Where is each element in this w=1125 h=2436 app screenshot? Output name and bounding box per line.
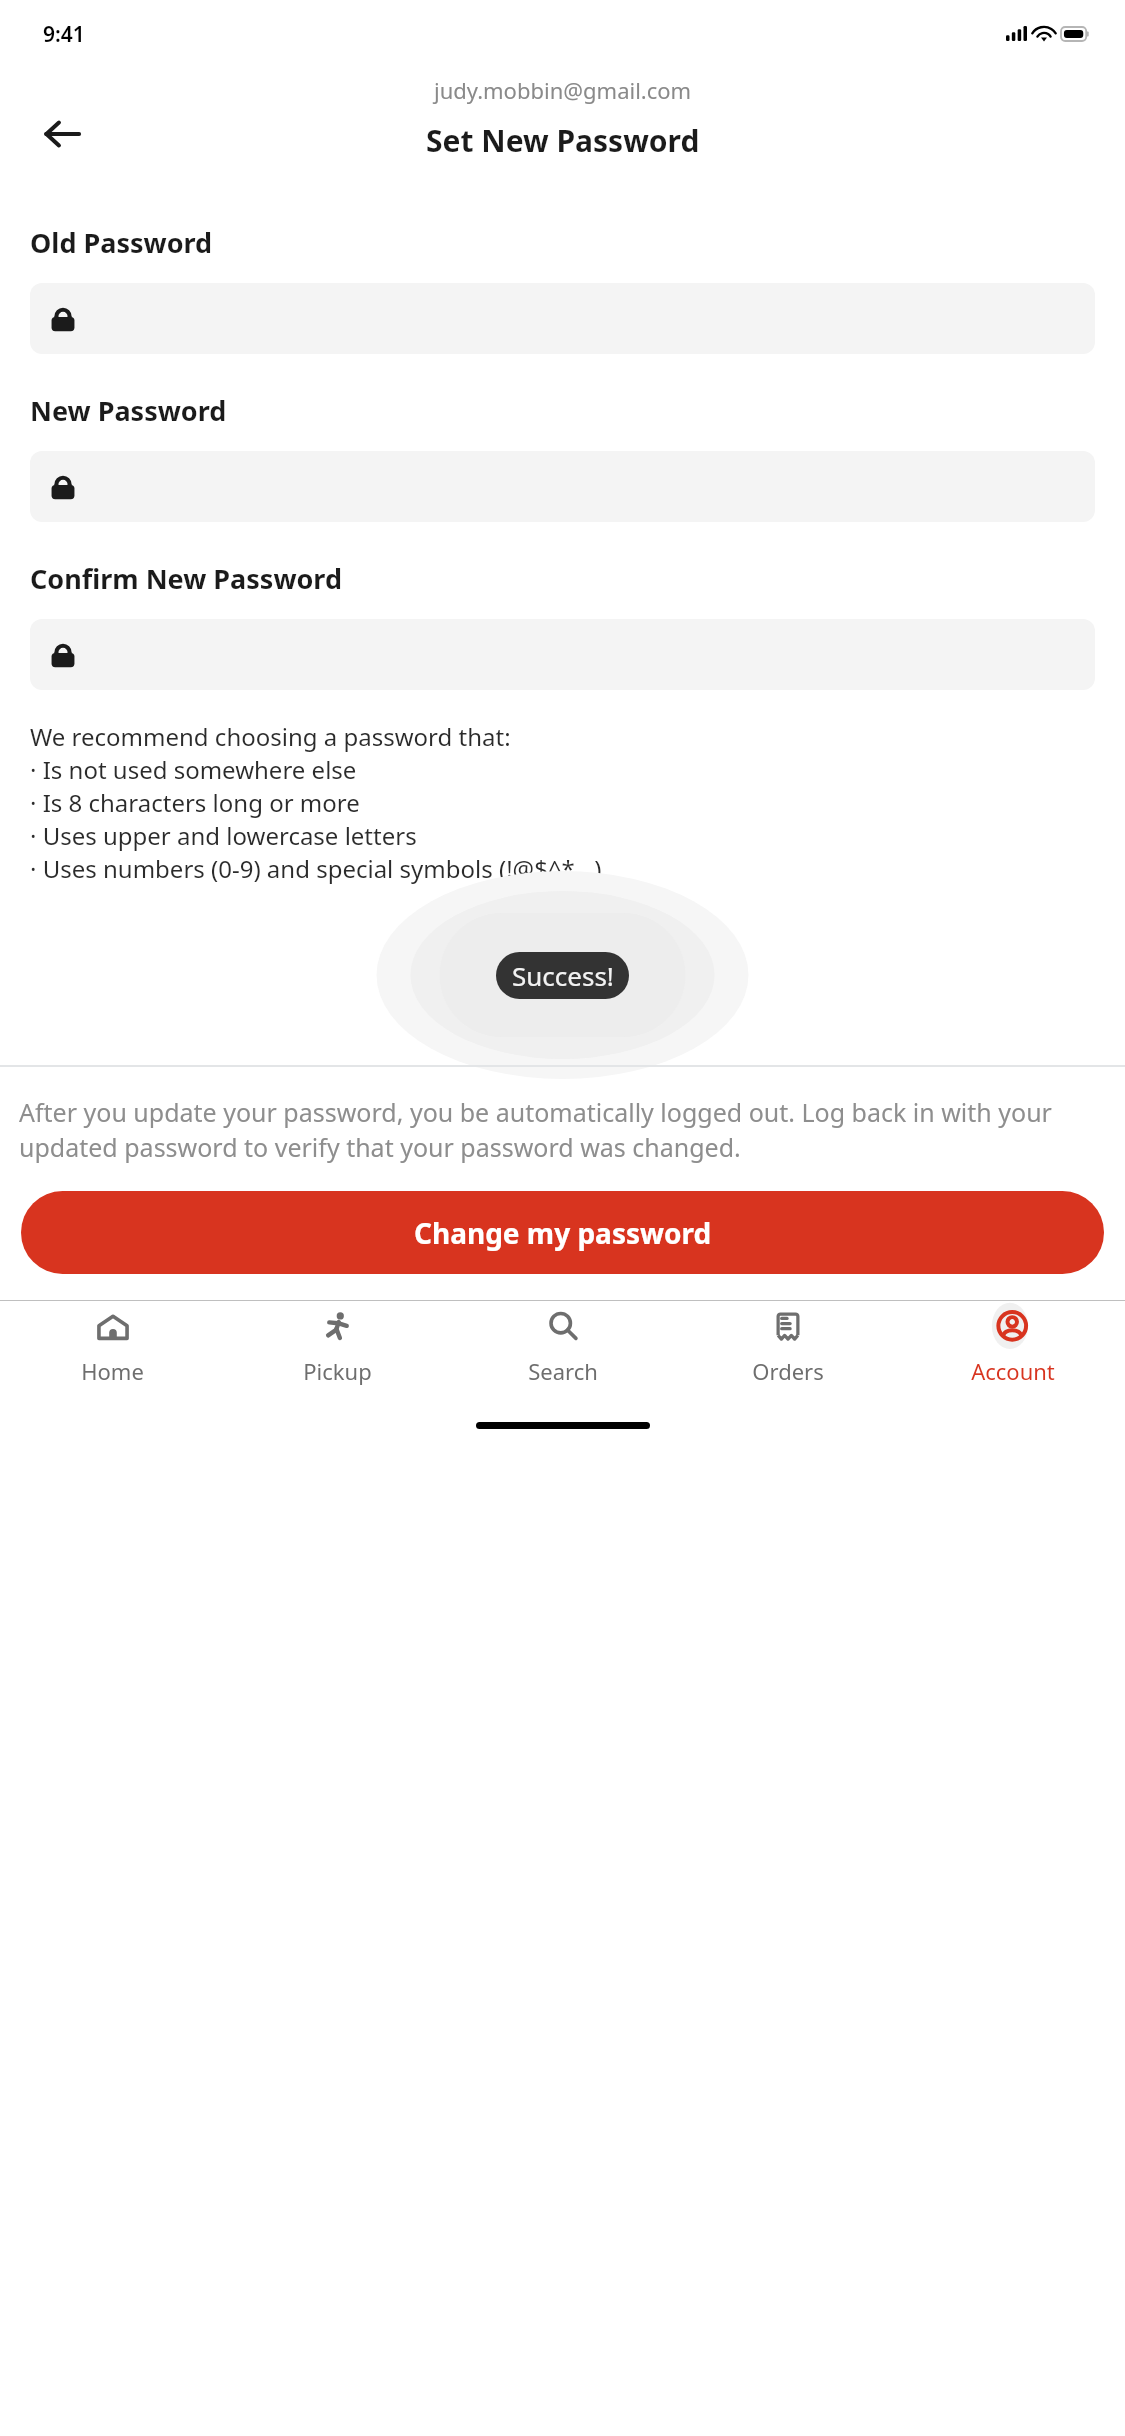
staticText: judy.mobbin@gmail.com <box>434 75 692 105</box>
button[interactable]: Confirm New Password <box>30 619 1095 690</box>
button[interactable]: Pickup <box>225 1301 450 1389</box>
button[interactable]: Home <box>0 1301 225 1389</box>
staticText: Success! <box>512 958 614 993</box>
staticText: Old Password <box>30 224 213 261</box>
staticText: 9:41 <box>43 20 85 49</box>
staticText: Home <box>81 1356 144 1386</box>
staticText: Orders <box>752 1356 824 1386</box>
button[interactable]: Search <box>450 1301 675 1389</box>
staticText: Change my password <box>414 1214 712 1252</box>
staticText: After you update your password, you be a… <box>19 1095 1106 1165</box>
staticText: · Is 8 characters long or more <box>30 786 360 819</box>
button[interactable]: New Password <box>30 451 1095 522</box>
staticText: Confirm New Password <box>30 560 342 597</box>
button[interactable]: Success! <box>496 952 629 999</box>
button[interactable]: Account <box>900 1301 1125 1389</box>
staticText: Set New Password <box>426 120 700 161</box>
staticText: Search <box>528 1356 598 1386</box>
staticText: We recommend choosing a password that: <box>30 720 511 753</box>
button[interactable]: Orders <box>675 1301 900 1389</box>
button[interactable]: Change my password <box>21 1191 1104 1274</box>
button[interactable]: Back <box>26 98 98 170</box>
button[interactable]: Old Password <box>30 283 1095 354</box>
staticText: · Uses numbers (0-9) and special symbols… <box>30 852 602 885</box>
staticText: · Is not used somewhere else <box>30 753 357 786</box>
staticText: Pickup <box>303 1356 372 1386</box>
staticText: New Password <box>30 392 227 429</box>
staticText: · Uses upper and lowercase letters <box>30 819 417 852</box>
staticText: Account <box>971 1356 1055 1386</box>
